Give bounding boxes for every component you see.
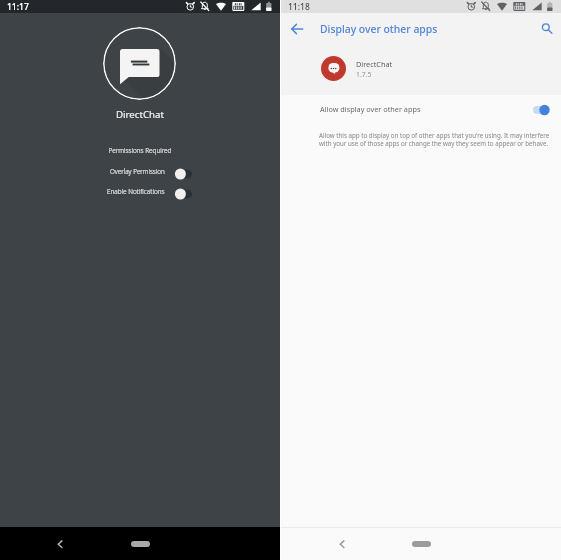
button[interactable]: Back — [285, 13, 309, 45]
button[interactable]: DirectChat — [281, 52, 561, 85]
button[interactable]: Search — [536, 18, 558, 40]
staticText: with your use of those apps or change th… — [319, 139, 549, 147]
staticText: DirectChat — [0, 108, 280, 121]
button[interactable]: Allow display over other apps — [281, 98, 561, 122]
button[interactable]: Enable Notifications — [0, 184, 280, 204]
staticText: 11:18 — [288, 1, 310, 13]
button[interactable]: Home — [131, 541, 150, 547]
button[interactable]: Overlay Permission — [0, 164, 280, 184]
staticText: Overlay Permission — [110, 167, 165, 176]
button[interactable]: Back — [329, 527, 353, 560]
staticText: 11:17 — [7, 1, 29, 13]
staticText: Permissions Required — [0, 146, 280, 155]
button[interactable]: Home — [412, 541, 431, 547]
staticText: Display over other apps — [320, 22, 438, 36]
staticText: Enable Notifications — [107, 187, 165, 196]
button[interactable]: Back — [48, 527, 72, 560]
staticText: DirectChat — [356, 59, 393, 69]
staticText: Allow display over other apps — [320, 104, 421, 114]
staticText: 1.7.5 — [356, 70, 372, 79]
staticText: Allow this app to display on top of othe… — [319, 131, 550, 139]
